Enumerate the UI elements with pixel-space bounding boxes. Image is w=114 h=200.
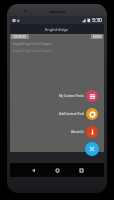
button[interactable]: MORE [91,34,103,39]
staticText: MORE [93,35,102,39]
button[interactable]: Back [28,165,38,175]
button[interactable]: About Us [40,126,98,138]
staticText: EnglishEdge Demo Chapter [13,49,52,53]
staticText: Add Content Pack [59,112,84,116]
staticText: EnglishEdge [45,27,69,32]
button[interactable]: COURSES [11,34,29,39]
button[interactable]: My Content Packs [40,90,98,102]
button[interactable]: EnglishEdge Demo Chapter [10,42,104,56]
staticText: COURSES [13,35,27,39]
staticText: EnglishEdge Demo Chapter [13,42,52,46]
staticText: About Us [71,130,84,134]
staticText: 3:30 [92,17,102,24]
button[interactable]: Close actions menu [85,142,99,156]
button[interactable]: Add Content Pack [40,108,98,120]
staticText: My Content Packs [58,94,84,98]
button[interactable]: Home [52,165,62,175]
button[interactable]: EnglishEdge [10,24,104,34]
button[interactable]: Recent apps [76,165,86,175]
